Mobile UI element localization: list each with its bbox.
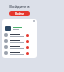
button[interactable] xyxy=(4,50,35,56)
button[interactable] xyxy=(4,32,35,38)
staticText: Войти xyxy=(15,12,24,16)
staticText: Войдите в аккаунт xyxy=(7,4,32,14)
button[interactable]: Войти xyxy=(9,11,30,16)
button[interactable] xyxy=(4,44,35,50)
button[interactable] xyxy=(4,38,35,44)
